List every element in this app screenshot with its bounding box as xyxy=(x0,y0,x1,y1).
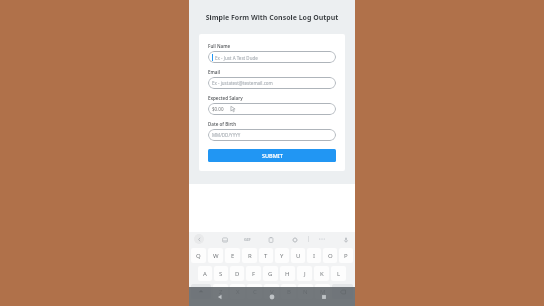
staticText: P xyxy=(344,252,348,260)
button[interactable]: Clipboard xyxy=(266,235,275,244)
staticText: U xyxy=(296,252,301,260)
button[interactable]: P xyxy=(339,248,353,263)
staticText: $0.00 xyxy=(212,106,224,112)
button[interactable]: Y xyxy=(275,248,289,263)
button[interactable]: O xyxy=(323,248,337,263)
button[interactable]: Ex - justatest@testemail.com xyxy=(208,77,336,89)
staticText: Ex - Just A Test Dude xyxy=(215,55,258,61)
staticText: L xyxy=(337,270,341,278)
button[interactable]: F xyxy=(246,266,261,281)
staticText: M xyxy=(320,288,326,296)
staticText: Simple Form With Console Log Output xyxy=(199,13,345,23)
staticText: R xyxy=(248,252,252,260)
button[interactable]: Z xyxy=(213,284,228,299)
staticText: K xyxy=(320,270,324,278)
button[interactable]: GIF xyxy=(244,237,251,242)
staticText: SUBMIT xyxy=(262,152,283,159)
button[interactable]: Backspace xyxy=(332,284,353,299)
staticText: S xyxy=(219,270,223,278)
staticText: V xyxy=(270,288,274,296)
staticText: B xyxy=(287,288,291,296)
button[interactable]: W xyxy=(208,248,223,263)
button[interactable]: A xyxy=(198,266,212,281)
button[interactable]: MM/DD/YYYY xyxy=(208,129,336,141)
button[interactable]: Back xyxy=(194,234,204,244)
button[interactable]: Q xyxy=(191,248,206,263)
button[interactable]: Recent apps xyxy=(317,290,331,304)
staticText: W xyxy=(213,252,219,260)
button[interactable]: B xyxy=(281,284,296,299)
button[interactable]: I xyxy=(307,248,321,263)
button[interactable]: Ex - Just A Test Dude xyxy=(208,51,336,63)
staticText: Q xyxy=(196,252,201,260)
button[interactable]: Back xyxy=(213,290,227,304)
staticText: MM/DD/YYYY xyxy=(212,132,241,138)
staticText: H xyxy=(285,270,290,278)
staticText: N xyxy=(303,288,308,296)
button[interactable]: Stickers xyxy=(220,235,229,244)
button[interactable]: More options xyxy=(318,235,326,243)
staticText: Full Name xyxy=(208,43,231,49)
button[interactable]: N xyxy=(298,284,313,299)
staticText: J xyxy=(304,270,306,278)
staticText: Z xyxy=(219,288,223,296)
button[interactable]: K xyxy=(314,266,329,281)
staticText: E xyxy=(231,252,235,260)
staticText: F xyxy=(252,270,256,278)
button[interactable]: Voice input xyxy=(341,235,350,244)
staticText: Date of Birth xyxy=(208,121,237,127)
button[interactable]: C xyxy=(247,284,262,299)
staticText: Email xyxy=(208,69,221,75)
staticText: G xyxy=(268,270,273,278)
button[interactable]: Home xyxy=(265,290,279,304)
button[interactable]: Settings xyxy=(290,235,299,244)
button[interactable]: V xyxy=(264,284,279,299)
button[interactable]: M xyxy=(315,284,330,299)
button[interactable]: E xyxy=(225,248,240,263)
staticText: Y xyxy=(280,252,284,260)
button[interactable]: T xyxy=(259,248,273,263)
button[interactable]: H xyxy=(280,266,295,281)
staticText: A xyxy=(203,270,207,278)
staticText: D xyxy=(235,270,240,278)
button[interactable]: SUBMIT xyxy=(208,149,336,162)
button[interactable]: G xyxy=(263,266,278,281)
button[interactable]: D xyxy=(230,266,244,281)
button[interactable]: S xyxy=(214,266,228,281)
staticText: Ex - justatest@testemail.com xyxy=(212,80,273,86)
button[interactable]: L xyxy=(331,266,346,281)
button[interactable]: J xyxy=(297,266,312,281)
staticText: GIF xyxy=(244,237,251,242)
staticText: Expected Salary xyxy=(208,95,243,101)
staticText: O xyxy=(328,252,333,260)
button[interactable]: U xyxy=(291,248,305,263)
button[interactable]: $0.00 xyxy=(208,103,336,115)
button[interactable]: R xyxy=(242,248,257,263)
button[interactable]: Shift xyxy=(191,284,211,299)
staticText: I xyxy=(313,252,316,260)
button[interactable]: X xyxy=(230,284,245,299)
staticText: T xyxy=(264,252,268,260)
